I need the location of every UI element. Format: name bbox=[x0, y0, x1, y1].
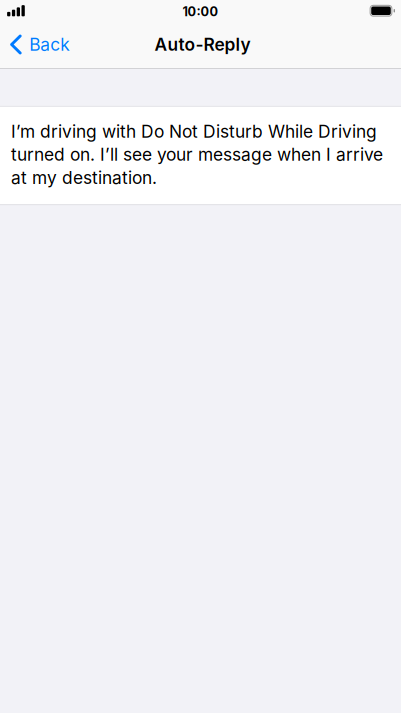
button[interactable]: Back bbox=[0, 21, 82, 68]
button[interactable]: I’m driving with Do Not Disturb While Dr… bbox=[0, 106, 401, 205]
staticText: Back bbox=[29, 34, 70, 55]
staticText: 10:00 bbox=[182, 4, 218, 19]
staticText: Auto-Reply bbox=[154, 34, 250, 55]
staticText: I’m driving with Do Not Disturb While Dr… bbox=[11, 121, 383, 188]
